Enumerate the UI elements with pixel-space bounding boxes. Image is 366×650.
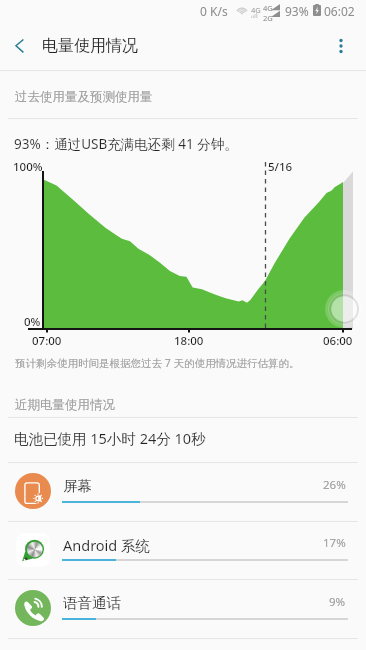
- button[interactable]: Back: [0, 26, 40, 66]
- staticText: 电池已使用 15小时 24分 10秒: [14, 428, 206, 448]
- staticText: 18:00: [174, 333, 204, 349]
- button[interactable]: More options: [326, 26, 356, 56]
- staticText: 17%: [323, 535, 346, 551]
- staticText: 5/16: [268, 159, 293, 175]
- staticText: 语音通话: [63, 594, 121, 612]
- button[interactable]: [0, 522, 366, 580]
- staticText: 06:02: [324, 3, 355, 19]
- staticText: 电量使用情况: [42, 36, 138, 56]
- staticText: 9%: [329, 594, 346, 610]
- staticText: 07:00: [32, 333, 62, 349]
- staticText: 4G: [251, 5, 261, 15]
- staticText: 屏幕: [63, 477, 92, 495]
- staticText: 4G: [263, 3, 273, 13]
- staticText: 93%：通过USB充满电还剩 41 分钟。: [14, 135, 238, 153]
- staticText: 06:00: [323, 333, 353, 349]
- button[interactable]: [0, 463, 366, 521]
- staticText: 0%: [24, 314, 41, 330]
- staticText: 过去使用量及预测使用量: [15, 89, 153, 105]
- staticText: 近期电量使用情况: [15, 397, 115, 413]
- staticText: 100%: [13, 159, 43, 175]
- staticText: 2G: [263, 13, 273, 23]
- staticText: Android 系统: [63, 535, 151, 555]
- button[interactable]: [0, 580, 366, 638]
- staticText: 93%: [285, 3, 309, 19]
- staticText: 26%: [323, 477, 346, 493]
- staticText: 预计剩余使用时间是根据您过去 7 天的使用情况进行估算的。: [15, 356, 300, 370]
- staticText: 0 K/s: [200, 3, 228, 19]
